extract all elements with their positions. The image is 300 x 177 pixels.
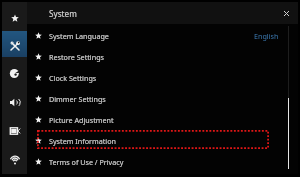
staticText: Dimmer Settings (49, 94, 106, 104)
button[interactable]: Dimmer Settings (27, 88, 298, 109)
staticText: Picture Adjustment (49, 115, 114, 125)
button[interactable]: Restore Settings (27, 46, 298, 67)
button[interactable]: Picture (2, 61, 27, 86)
button[interactable]: Settings (2, 33, 27, 58)
button[interactable]: Favorites (2, 5, 27, 30)
button[interactable]: Audio (2, 90, 27, 115)
staticText: System Language (49, 31, 109, 41)
staticText: System (49, 8, 77, 19)
staticText: Clock Settings (49, 73, 97, 83)
staticText: Restore Settings (49, 52, 105, 62)
staticText: Terms of Use / Privacy (49, 157, 124, 167)
button[interactable]: Close (280, 7, 293, 20)
button[interactable]: Clock Settings (27, 67, 298, 88)
button[interactable]: Input source (2, 118, 27, 143)
button[interactable]: Terms of Use / Privacy (27, 151, 298, 172)
button[interactable]: Picture Adjustment (27, 109, 298, 130)
button[interactable]: System Information (27, 130, 298, 151)
button[interactable]: Network (2, 147, 27, 172)
staticText: English (254, 31, 279, 41)
staticText: System Information (49, 136, 116, 146)
button[interactable]: System Language (27, 25, 298, 46)
